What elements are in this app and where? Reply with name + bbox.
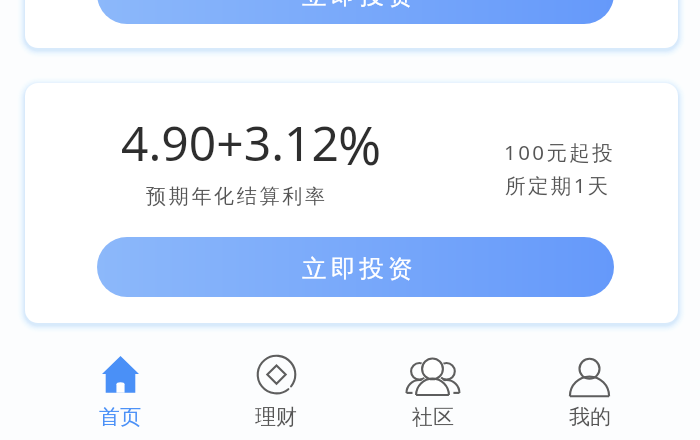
button[interactable]: 立即投资 xyxy=(97,0,614,24)
staticText: 首页 xyxy=(99,404,141,430)
button[interactable]: Home xyxy=(42,350,198,430)
button[interactable]: Community xyxy=(354,350,511,430)
staticText: 我的 xyxy=(569,404,611,430)
button[interactable]: 立即投资 xyxy=(97,237,614,297)
button[interactable]: Finance xyxy=(198,350,354,430)
staticText: 理财 xyxy=(255,404,297,430)
staticText: 立即投资 xyxy=(302,253,417,284)
staticText: 预期年化结算利率 xyxy=(146,184,328,209)
staticText: 立即投资 xyxy=(302,0,417,11)
button[interactable]: Profile xyxy=(511,350,668,430)
staticText: 社区 xyxy=(412,404,454,430)
staticText: % xyxy=(338,109,382,180)
staticText: 100元起投 xyxy=(504,138,616,166)
staticText: 所定期1天 xyxy=(505,171,611,199)
staticText: 4.90+3.12 xyxy=(121,110,339,175)
